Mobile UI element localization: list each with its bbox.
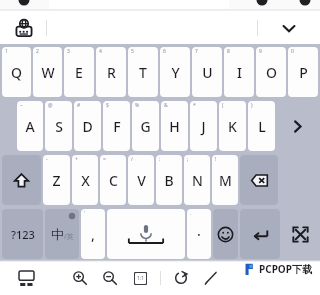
button[interactable]: Emoji xyxy=(213,209,238,259)
button[interactable]: . xyxy=(187,209,211,259)
button[interactable]: % xyxy=(132,101,159,151)
staticText: , xyxy=(91,225,95,244)
staticText: 4 xyxy=(99,48,102,55)
button[interactable]: Enter xyxy=(240,209,280,259)
staticText: P xyxy=(299,63,308,82)
staticText: I xyxy=(237,63,242,82)
button[interactable]: ) xyxy=(248,101,275,151)
button[interactable]: ! xyxy=(212,155,238,205)
staticText: C xyxy=(109,171,118,190)
staticText: ! xyxy=(215,156,217,163)
staticText: 3 xyxy=(67,48,70,55)
staticText: * xyxy=(193,102,196,109)
button[interactable]: ?123 xyxy=(2,209,43,259)
staticText: R xyxy=(107,63,116,82)
button[interactable]: 9 xyxy=(256,47,286,97)
button[interactable]: 8 xyxy=(224,47,254,97)
staticText: = xyxy=(103,156,106,163)
staticText: H xyxy=(169,117,180,136)
button[interactable]: 1 xyxy=(2,47,31,97)
staticText: ?123 xyxy=(11,227,35,242)
button[interactable]: 3 xyxy=(64,47,94,97)
button[interactable]: 6 xyxy=(160,47,190,97)
button[interactable]: Next xyxy=(277,101,318,151)
button[interactable]: + xyxy=(72,155,98,205)
staticText: 0 xyxy=(291,48,294,55)
button[interactable]: & xyxy=(161,101,188,151)
staticText: % xyxy=(135,102,140,109)
staticText: ; xyxy=(187,156,189,163)
button[interactable]: 5 xyxy=(128,47,158,97)
button[interactable]: 7 xyxy=(192,47,222,97)
staticText: $ xyxy=(106,102,109,109)
button[interactable]: ( xyxy=(219,101,246,151)
staticText: L xyxy=(258,117,266,136)
staticText: 5 xyxy=(131,48,134,55)
staticText: 8 xyxy=(227,48,230,55)
staticText: ~ xyxy=(20,102,23,109)
staticText: V xyxy=(137,171,146,190)
staticText: E xyxy=(75,63,83,82)
staticText: T xyxy=(139,63,147,82)
staticText: ( xyxy=(222,102,224,109)
button[interactable]: * xyxy=(190,101,217,151)
button[interactable]: ~ xyxy=(17,101,43,151)
staticText: 9 xyxy=(259,48,262,55)
staticText: W xyxy=(41,63,55,82)
button[interactable]: 0 xyxy=(288,47,318,97)
button[interactable]: Display xyxy=(14,266,38,290)
staticText: M xyxy=(219,171,232,190)
staticText: N xyxy=(192,171,203,190)
staticText: - xyxy=(46,156,48,163)
staticText: : xyxy=(159,156,161,163)
button[interactable]: Backspace xyxy=(240,155,278,205)
button[interactable]: ; xyxy=(184,155,210,205)
staticText: F xyxy=(113,117,121,136)
staticText: X xyxy=(81,171,90,190)
staticText: O xyxy=(266,63,277,82)
staticText: 7 xyxy=(195,48,198,55)
button[interactable]: Zoom in xyxy=(68,266,92,290)
staticText: J xyxy=(201,117,206,136)
button[interactable]: @ xyxy=(45,101,72,151)
button[interactable]: Switch input language xyxy=(12,16,36,40)
button[interactable]: / xyxy=(128,155,154,205)
button[interactable]: Actual size xyxy=(128,266,152,290)
staticText: PCPOP下载 xyxy=(259,262,312,276)
staticText: # xyxy=(77,102,81,109)
staticText: D xyxy=(82,117,93,136)
staticText: A xyxy=(25,117,35,136)
staticText: 2 xyxy=(36,48,39,55)
staticText: Q xyxy=(11,63,22,82)
staticText: G xyxy=(140,117,151,136)
button[interactable]: 中 xyxy=(45,209,79,259)
button[interactable]: Shift xyxy=(2,155,41,205)
button[interactable]: Resize keyboard xyxy=(282,209,318,259)
button[interactable]: Refresh xyxy=(169,266,193,290)
staticText: U xyxy=(202,63,213,82)
button[interactable]: # xyxy=(74,101,101,151)
staticText: 中 xyxy=(51,226,64,242)
staticText: & xyxy=(164,102,168,109)
staticText: · xyxy=(197,225,201,244)
button[interactable]: Collapse keyboard xyxy=(258,11,320,44)
button[interactable]: - xyxy=(43,155,70,205)
button[interactable]: Space xyxy=(107,209,185,259)
staticText: /英 xyxy=(64,232,74,242)
staticText: ) xyxy=(251,102,253,109)
button[interactable]: ' xyxy=(81,209,105,259)
staticText: ' xyxy=(84,210,86,217)
button[interactable]: = xyxy=(100,155,126,205)
button[interactable]: 2 xyxy=(33,47,62,97)
staticText: 6 xyxy=(163,48,166,55)
staticText: @ xyxy=(48,102,53,109)
staticText: K xyxy=(228,117,237,136)
button[interactable]: : xyxy=(156,155,182,205)
button[interactable]: Zoom out xyxy=(98,266,122,290)
button[interactable]: $ xyxy=(103,101,130,151)
staticText: . xyxy=(190,210,192,217)
staticText: + xyxy=(75,156,78,163)
button[interactable]: Draw xyxy=(199,266,223,290)
staticText: / xyxy=(131,156,133,163)
button[interactable]: 4 xyxy=(96,47,126,97)
